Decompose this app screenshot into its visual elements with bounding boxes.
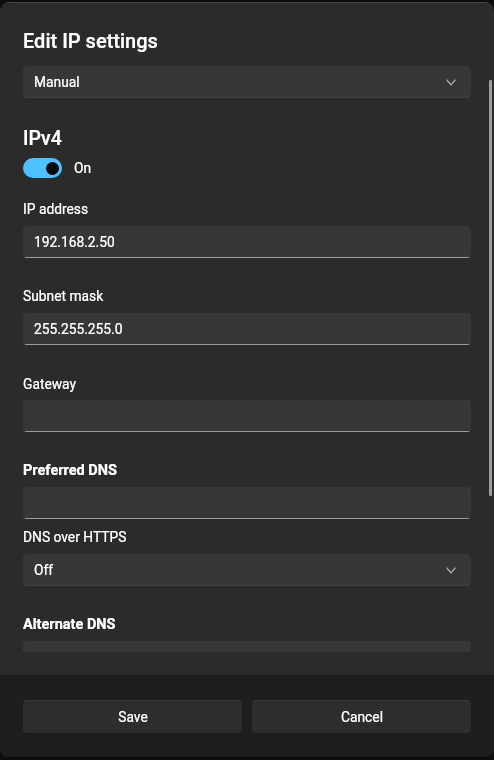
button[interactable]: IPv4 enabled [23, 158, 62, 178]
staticText: IPv4 [23, 127, 62, 150]
staticText: Save [118, 709, 148, 725]
button[interactable]: Cancel [252, 700, 471, 733]
staticText: Preferred DNS [23, 462, 117, 479]
staticText: Cancel [341, 709, 383, 725]
staticText: IP address [23, 201, 89, 217]
button[interactable]: DNS over HTTPS [23, 554, 471, 586]
button[interactable] [23, 400, 471, 432]
button[interactable]: 255.255.255.0 [23, 313, 471, 345]
staticText: Subnet mask [23, 288, 104, 304]
button[interactable]: IP assignment [23, 66, 471, 98]
staticText: 192.168.2.50 [34, 234, 115, 250]
staticText: Gateway [23, 376, 77, 392]
button[interactable]: Save [23, 700, 242, 733]
staticText: On [74, 160, 92, 176]
button[interactable] [23, 487, 471, 519]
staticText: Manual [34, 74, 80, 90]
staticText: 255.255.255.0 [34, 321, 123, 337]
staticText: Off [34, 562, 54, 578]
staticText: Edit IP settings [23, 29, 158, 52]
staticText: DNS over HTTPS [23, 529, 127, 545]
button[interactable]: 192.168.2.50 [23, 226, 471, 258]
staticText: Alternate DNS [23, 616, 116, 633]
